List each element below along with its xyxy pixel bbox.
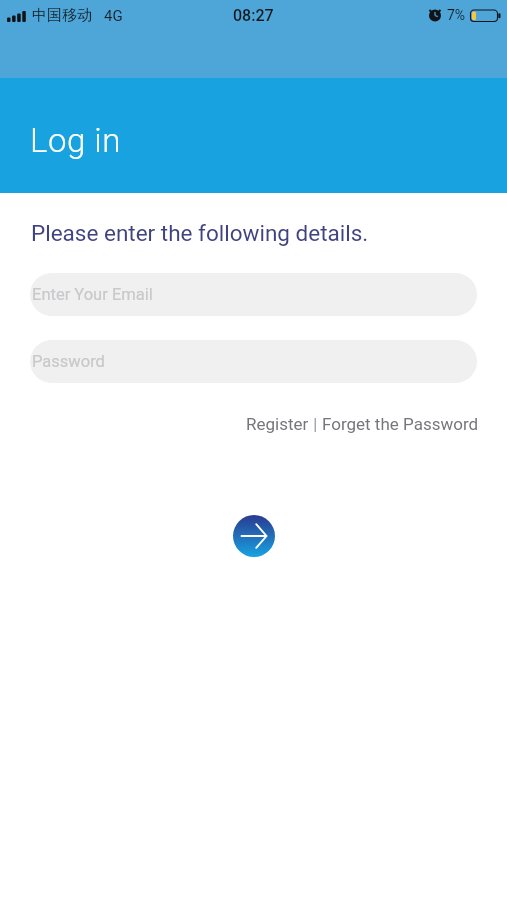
staticText: 中国移动 [32, 6, 92, 25]
button[interactable]: Register [246, 414, 309, 434]
button[interactable]: Enter Your Email [30, 273, 477, 316]
staticText: 4G [104, 7, 123, 25]
staticText: Enter Your Email [32, 285, 153, 304]
staticText: 08:27 [233, 6, 274, 25]
staticText: Log in [30, 121, 121, 160]
button[interactable]: Password [30, 340, 477, 383]
button[interactable] [233, 515, 275, 557]
staticText: Please enter the following details. [31, 220, 369, 246]
staticText: | [309, 414, 322, 434]
button[interactable]: Forget the Password [322, 414, 479, 434]
staticText: 7% [447, 7, 466, 23]
staticText: Password [32, 352, 105, 371]
